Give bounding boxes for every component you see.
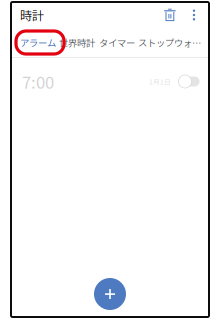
button[interactable]: Delete <box>160 9 180 21</box>
staticText: 1月1日 <box>149 77 171 86</box>
staticText: ストップウォ… <box>138 36 201 49</box>
button[interactable]: More options <box>180 9 205 21</box>
button[interactable]: 世界時計 <box>59 28 95 57</box>
button[interactable]: タイマー <box>99 28 135 57</box>
button[interactable]: 7:00 <box>11 58 209 105</box>
button[interactable]: アラーム <box>20 28 56 57</box>
staticText: アラーム <box>20 36 56 49</box>
button[interactable]: Add alarm <box>94 278 126 310</box>
staticText: 時計 <box>20 6 44 24</box>
staticText: 世界時計 <box>59 36 95 49</box>
staticText: 7:00 <box>22 69 54 93</box>
button[interactable]: ストップウォ… <box>138 28 201 57</box>
staticText: タイマー <box>99 36 135 49</box>
